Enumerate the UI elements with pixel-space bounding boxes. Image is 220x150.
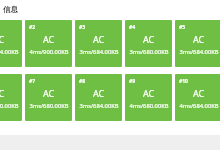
button[interactable]: #5: [175, 20, 220, 67]
staticText: AC: [43, 33, 55, 45]
button[interactable]: #6: [0, 74, 22, 121]
staticText: 4ms/680.00KB: [129, 102, 169, 110]
button[interactable]: #4: [125, 20, 172, 67]
staticText: AC: [143, 33, 155, 45]
staticText: 4ms/684.00KB: [0, 48, 19, 56]
staticText: 4ms/680.00KB: [0, 102, 19, 110]
staticText: AC: [93, 87, 105, 99]
staticText: #10: [179, 78, 188, 85]
staticText: #4: [129, 24, 136, 31]
staticText: AC: [0, 33, 5, 45]
staticText: #5: [179, 24, 186, 31]
button[interactable]: #1: [0, 20, 22, 67]
staticText: #2: [29, 24, 36, 31]
staticText: AC: [193, 87, 205, 99]
staticText: AC: [143, 87, 155, 99]
staticText: #9: [129, 78, 136, 85]
staticText: #3: [79, 24, 86, 31]
staticText: 4ms/900.00KB: [29, 48, 69, 56]
staticText: 3ms/680.00KB: [129, 48, 169, 56]
staticText: AC: [43, 87, 55, 99]
button[interactable]: #7: [25, 74, 72, 121]
button[interactable]: #8: [75, 74, 122, 121]
staticText: #7: [29, 78, 36, 85]
staticText: 3ms/684.00KB: [79, 48, 119, 56]
staticText: 3ms/680.00KB: [29, 102, 69, 110]
staticText: AC: [193, 33, 205, 45]
button[interactable]: #10: [175, 74, 220, 121]
staticText: 4ms/684.00KB: [179, 102, 219, 110]
staticText: 信息: [3, 5, 18, 14]
staticText: AC: [93, 33, 105, 45]
staticText: AC: [0, 87, 5, 99]
staticText: #8: [79, 78, 86, 85]
button[interactable]: #9: [125, 74, 172, 121]
button[interactable]: #3: [75, 20, 122, 67]
button[interactable]: #2: [25, 20, 72, 67]
staticText: 3ms/684.00KB: [179, 48, 219, 56]
staticText: 3ms/684.00KB: [79, 102, 119, 110]
